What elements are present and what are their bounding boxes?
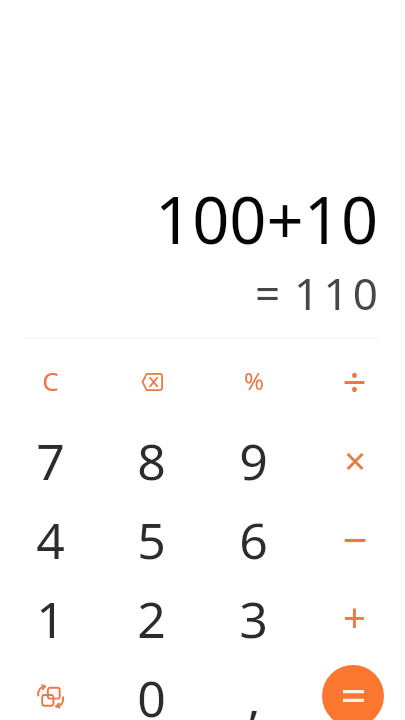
button[interactable]: Equals: [322, 665, 384, 720]
staticText: 100+10: [155, 175, 379, 264]
button[interactable]: 0: [101, 658, 202, 720]
staticText: C: [42, 363, 59, 398]
button[interactable]: 4: [0, 500, 101, 579]
button[interactable]: C: [0, 341, 101, 420]
staticText: 9: [239, 427, 268, 495]
staticText: +: [343, 589, 366, 643]
button[interactable]: 1: [0, 579, 101, 658]
staticText: ×: [344, 434, 366, 486]
button[interactable]: 9: [203, 421, 304, 500]
button[interactable]: −: [304, 499, 405, 578]
staticText: %: [244, 364, 264, 397]
button[interactable]: ÷: [304, 341, 405, 420]
button[interactable]: ×: [304, 420, 405, 499]
staticText: 4: [36, 506, 65, 574]
button[interactable]: %: [203, 341, 304, 420]
button[interactable]: +: [304, 576, 405, 655]
button[interactable]: ,: [203, 658, 304, 720]
staticText: −: [342, 509, 368, 569]
button[interactable]: 7: [0, 421, 101, 500]
staticText: =: [255, 263, 281, 323]
button[interactable]: 3: [203, 579, 304, 658]
staticText: 2: [137, 585, 166, 653]
staticText: 0: [137, 664, 166, 720]
staticText: 110: [294, 263, 383, 323]
staticText: 6: [239, 506, 268, 574]
staticText: 3: [239, 585, 268, 653]
staticText: 1: [36, 585, 65, 653]
button[interactable]: 2: [101, 579, 202, 658]
button[interactable]: 6: [203, 500, 304, 579]
staticText: 8: [137, 427, 166, 495]
staticText: ÷: [342, 352, 367, 409]
staticText: 7: [36, 427, 65, 495]
staticText: 5: [137, 506, 166, 574]
button[interactable]: 8: [101, 421, 202, 500]
button[interactable]: 5: [101, 500, 202, 579]
staticText: ,: [247, 664, 261, 720]
button[interactable]: Convert units: [0, 657, 101, 720]
button[interactable]: Delete: [101, 342, 202, 421]
